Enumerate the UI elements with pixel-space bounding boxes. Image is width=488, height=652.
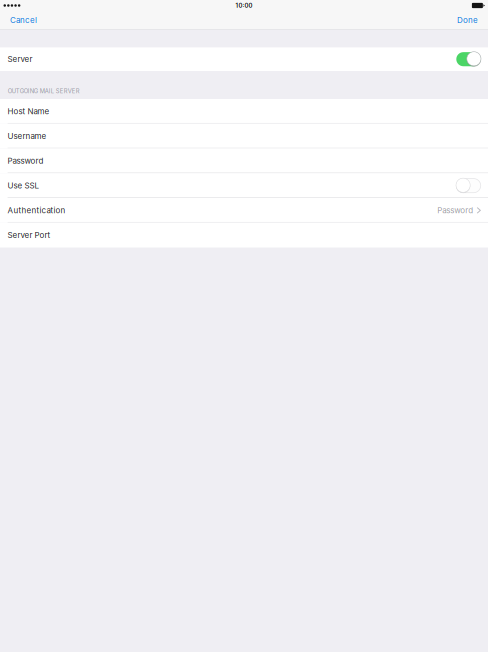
staticText: 10:00 (235, 2, 252, 9)
staticText: Server Port (8, 230, 51, 240)
staticText: Cancel (10, 15, 37, 25)
button[interactable]: Done (449, 11, 488, 29)
staticText: Use SSL (8, 181, 40, 190)
staticText: Server (8, 54, 33, 64)
staticText: Password (437, 205, 473, 215)
staticText: OUTGOING MAIL SERVER (8, 88, 80, 95)
button[interactable]: Authentication (0, 198, 488, 223)
staticText: Username (8, 131, 47, 141)
staticText: Password (8, 156, 44, 166)
button[interactable]: Host Name (0, 99, 488, 124)
button[interactable]: Username (0, 124, 488, 149)
staticText: Authentication (8, 205, 66, 215)
button[interactable]: Server (0, 47, 488, 71)
button[interactable]: Use SSL (0, 173, 488, 198)
button[interactable]: Server Port (0, 223, 488, 248)
button[interactable]: Cancel (0, 11, 45, 29)
staticText: Done (457, 15, 478, 25)
staticText: Host Name (8, 106, 50, 116)
button[interactable]: Password (0, 148, 488, 173)
